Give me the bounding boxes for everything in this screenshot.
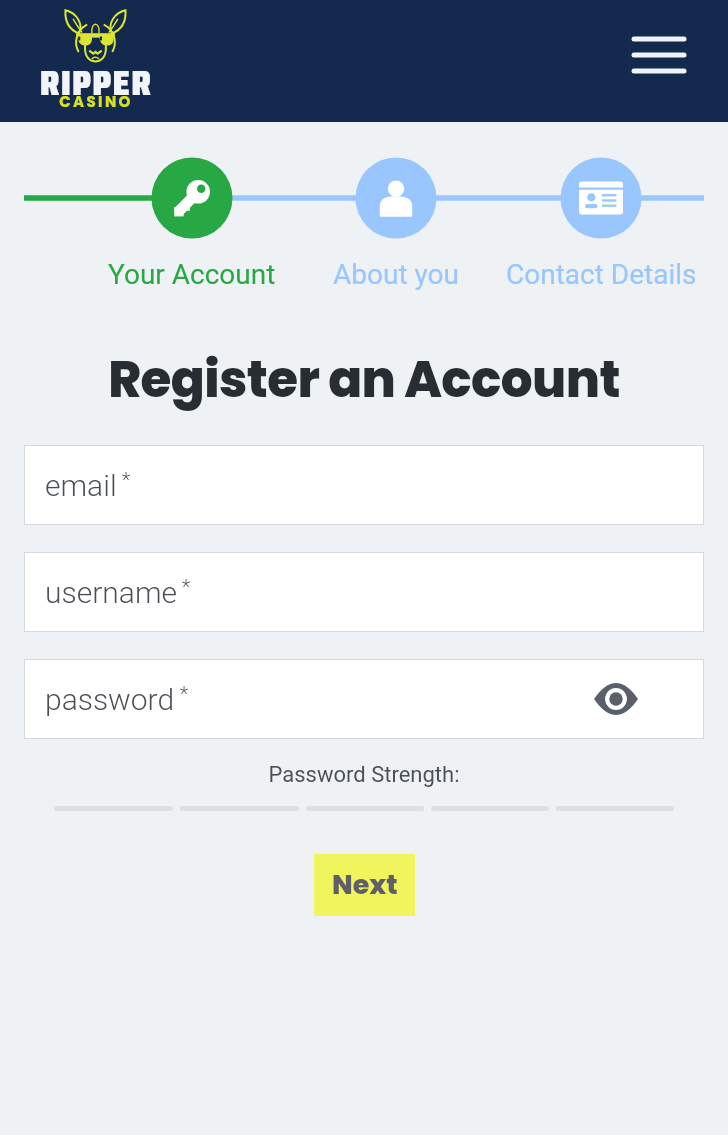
button[interactable]: About you: [296, 258, 496, 291]
staticText: *: [117, 468, 131, 491]
button[interactable]: Your Account: [92, 258, 292, 291]
button[interactable]: password: [24, 659, 704, 739]
staticText: email: [45, 468, 117, 503]
staticText: Your Account: [108, 258, 276, 291]
button[interactable]: username: [24, 552, 704, 632]
staticText: About you: [333, 258, 459, 291]
staticText: Register an Account: [0, 345, 728, 415]
staticText: Contact Details: [506, 258, 697, 291]
button[interactable]: Show password: [594, 683, 638, 715]
button[interactable]: Next: [314, 854, 415, 916]
staticText: *: [177, 575, 191, 598]
staticText: username: [45, 575, 177, 610]
staticText: RIPPER: [26, 56, 166, 110]
staticText: password: [45, 682, 175, 717]
button[interactable]: Ripper Casino home: [26, 0, 166, 122]
staticText: CASINO: [26, 91, 166, 112]
button[interactable]: Menu: [616, 25, 706, 93]
staticText: *: [175, 682, 189, 705]
button[interactable]: Contact Details: [486, 258, 716, 291]
button[interactable]: email: [24, 445, 704, 525]
staticText: Password Strength:: [0, 762, 728, 788]
staticText: Next: [332, 866, 398, 904]
